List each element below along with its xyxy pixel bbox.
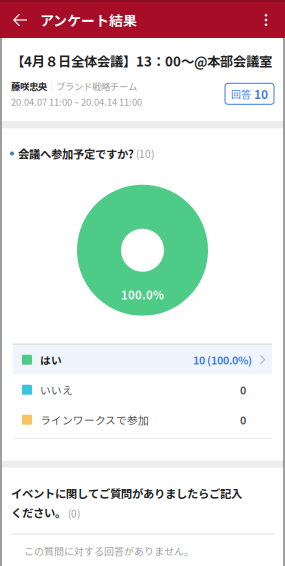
- staticText: 10 (100.0%): [193, 352, 252, 367]
- staticText: (10): [134, 146, 154, 161]
- staticText: はい: [40, 352, 62, 367]
- staticText: ください。: [11, 504, 66, 521]
- button[interactable]: はい: [2, 345, 283, 375]
- staticText: 20.04.07 11:00 ~ 20.04.14 11:00: [11, 95, 142, 108]
- staticText: この質問に対する回答がありません。: [24, 544, 194, 558]
- staticText: ｜: [47, 79, 56, 93]
- staticText: 【4月８日全体会議】13：00〜@本部会議室: [11, 51, 272, 70]
- staticText: 100.0%: [121, 286, 164, 303]
- button[interactable]: More options: [259, 2, 285, 38]
- staticText: (0): [66, 506, 80, 521]
- staticText: 藤咲忠央: [11, 79, 47, 93]
- staticText: 回答: [231, 87, 251, 101]
- staticText: イベントに関してご質問がありましたらご記入: [11, 485, 242, 501]
- staticText: 会議へ参加予定ですか?: [18, 145, 134, 162]
- button[interactable]: ラインワークスで参加: [2, 405, 283, 435]
- button[interactable]: いいえ: [2, 375, 283, 405]
- staticText: 0: [240, 412, 246, 427]
- staticText: 0: [240, 382, 246, 397]
- button[interactable]: 回答: [225, 83, 274, 104]
- staticText: ブランド戦略チーム: [56, 79, 137, 93]
- staticText: アンケート結果: [40, 10, 137, 30]
- staticText: ラインワークスで参加: [40, 412, 149, 427]
- button[interactable]: Back: [0, 2, 40, 38]
- staticText: いいえ: [40, 382, 73, 397]
- staticText: 10: [254, 85, 268, 102]
